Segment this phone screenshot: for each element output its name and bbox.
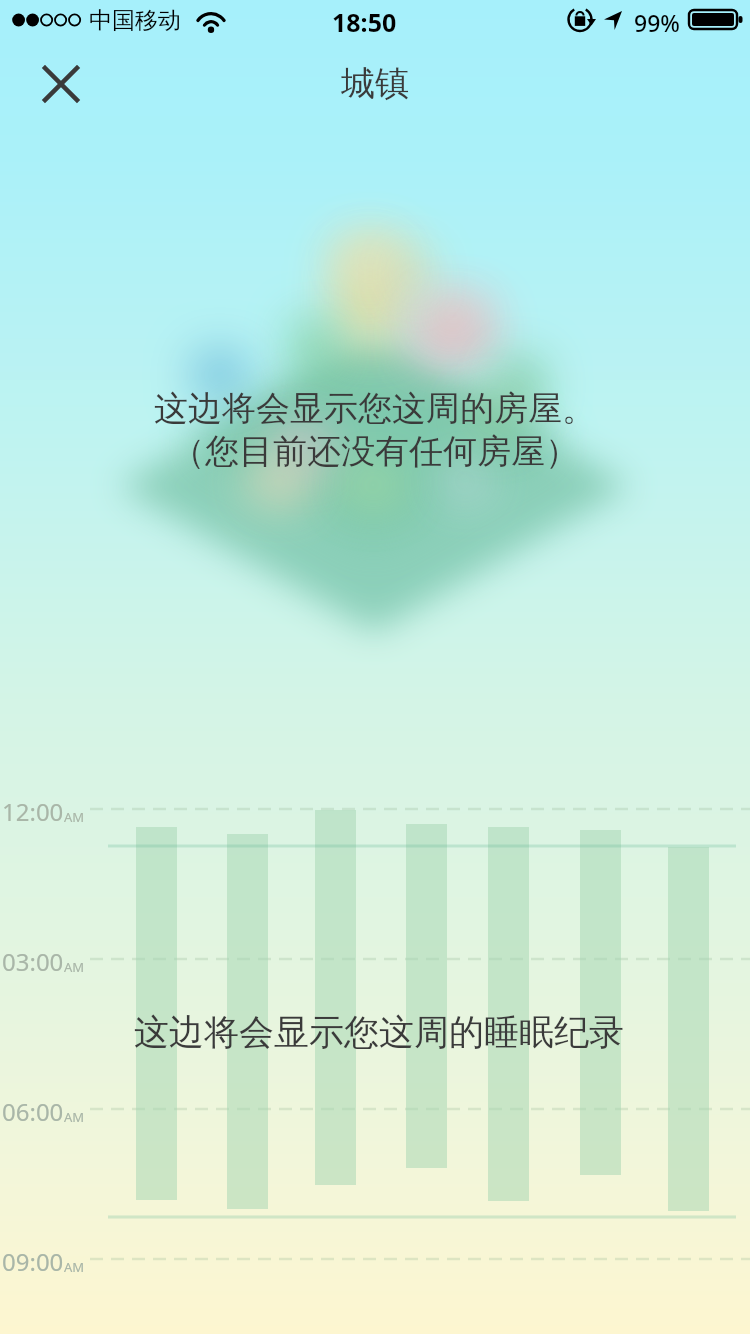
staticText: 城镇 (341, 62, 409, 105)
staticText: AM (64, 808, 85, 826)
staticText: 03:00 (2, 945, 64, 978)
staticText: AM (64, 958, 85, 976)
staticText: AM (64, 1258, 85, 1276)
staticText: 12:00 (2, 795, 64, 828)
staticText: 中国移动 (89, 6, 181, 35)
staticText: 这边将会显示您这周的睡眠纪录 (134, 1010, 624, 1054)
staticText: 09:00 (2, 1245, 64, 1278)
staticText: AM (64, 1108, 85, 1126)
staticText: （您目前还没有任何房屋） (171, 430, 579, 473)
staticText: 18:50 (332, 5, 397, 39)
staticText: 06:00 (2, 1095, 64, 1128)
button[interactable]: Close (31, 54, 91, 114)
staticText: 99% (634, 7, 680, 38)
staticText: 这边将会显示您这周的房屋。 (154, 387, 596, 430)
